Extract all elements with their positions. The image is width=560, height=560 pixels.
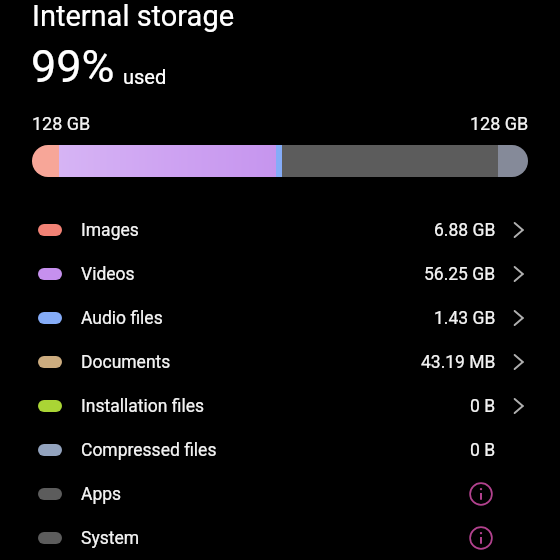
staticText: Apps — [81, 484, 122, 505]
staticText: used — [123, 65, 167, 88]
staticText: 0 B — [470, 440, 496, 461]
staticText: 0 B — [470, 396, 496, 417]
other: Open Images — [510, 222, 526, 238]
staticText: 99% — [31, 40, 115, 93]
button[interactable]: Compressed files — [0, 428, 560, 472]
button[interactable]: About Apps — [469, 482, 493, 506]
button[interactable]: Images — [0, 208, 560, 252]
staticText: Videos — [81, 264, 135, 285]
staticText: 128 GB — [470, 113, 529, 134]
button[interactable]: Apps — [0, 472, 560, 516]
other: Open Installation files — [510, 398, 526, 414]
button[interactable]: Installation files — [0, 384, 560, 428]
button[interactable]: About System — [469, 526, 493, 550]
button[interactable]: Videos — [0, 252, 560, 296]
button[interactable]: System — [0, 516, 560, 560]
staticText: 128 GB — [32, 113, 91, 134]
staticText: System — [81, 528, 140, 549]
staticText: 1.43 GB — [434, 308, 496, 329]
staticText: Images — [81, 220, 139, 241]
other: Open Audio files — [510, 310, 526, 326]
staticText: Compressed files — [81, 440, 217, 461]
staticText: Audio files — [81, 308, 163, 329]
staticText: Installation files — [81, 396, 204, 417]
staticText: 6.88 GB — [434, 220, 496, 241]
button[interactable]: Documents — [0, 340, 560, 384]
staticText: Internal storage — [32, 0, 235, 33]
button[interactable]: Audio files — [0, 296, 560, 340]
staticText: 43.19 MB — [421, 352, 496, 373]
other: Open Videos — [510, 266, 526, 282]
staticText: 56.25 GB — [424, 264, 496, 285]
other: Open Documents — [510, 354, 526, 370]
staticText: Documents — [81, 352, 171, 373]
